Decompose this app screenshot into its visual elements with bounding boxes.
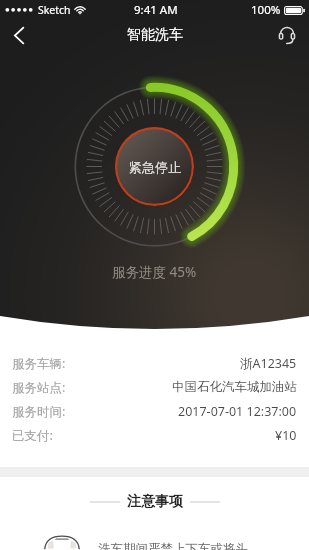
button[interactable]: Customer support (272, 20, 302, 50)
staticText: Sketch (38, 3, 71, 17)
staticText: 9:41 AM (134, 2, 178, 18)
staticText: 服务时间: (12, 403, 66, 420)
staticText: 紧急停止 (129, 159, 181, 175)
staticText: 已支付: (12, 427, 53, 444)
staticText: 浙A12345 (240, 355, 297, 372)
button[interactable]: Back (4, 20, 34, 50)
staticText: 服务车辆: (12, 355, 66, 372)
staticText: ¥10 (275, 427, 297, 444)
staticText: 洗车期间严禁上下车或将头 (98, 541, 248, 550)
staticText: 中国石化汽车城加油站 (172, 379, 297, 395)
staticText: 2017-07-01 12:37:00 (178, 403, 297, 420)
staticText: 服务站点: (12, 379, 66, 396)
staticText: 服务进度 45% (112, 263, 197, 281)
button[interactable]: 紧急停止 (115, 127, 194, 206)
staticText: 注意事项 (127, 493, 183, 511)
staticText: 100% (251, 2, 281, 18)
staticText: 智能洗车 (127, 26, 183, 44)
